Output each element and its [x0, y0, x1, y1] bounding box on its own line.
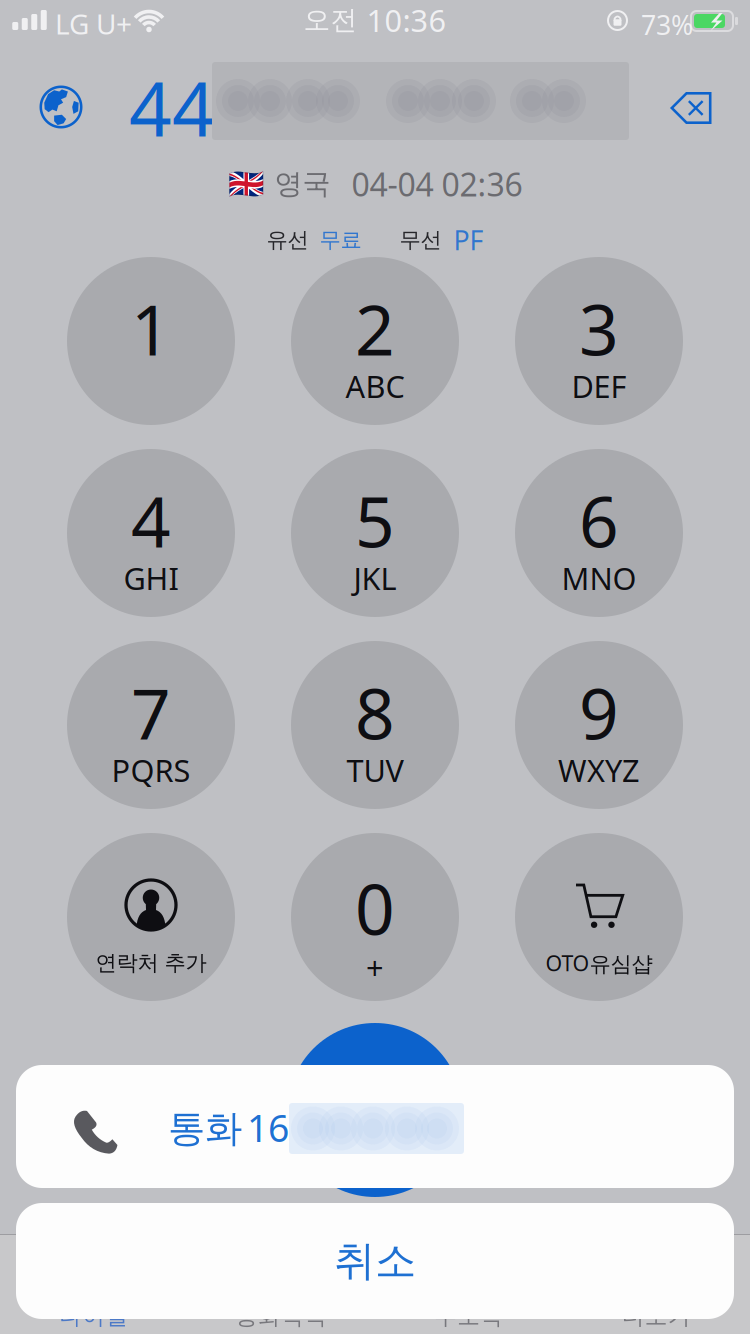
staticText: OTO유심샵 [545, 949, 652, 977]
button[interactable]: Call [288, 1023, 462, 1197]
button[interactable]: 4 [67, 449, 235, 617]
staticText: 8 [355, 666, 395, 759]
button[interactable]: 0 [291, 833, 459, 1001]
staticText: 04-04 02:36 [351, 163, 522, 205]
button[interactable]: International dialing [21, 67, 101, 147]
button[interactable]: 취소 [16, 1203, 734, 1319]
staticText: 통화목록 [235, 1302, 327, 1330]
staticText: 4 [131, 474, 171, 567]
staticText: 7 [131, 666, 171, 759]
staticText: JKL [353, 558, 396, 598]
staticText: 주소록 [434, 1302, 503, 1330]
staticText: 무료 [319, 227, 361, 253]
staticText: GHI [123, 558, 178, 598]
staticText: 1 [131, 282, 171, 375]
staticText: 16 [247, 1103, 289, 1152]
staticText: DEF [571, 366, 626, 406]
button[interactable]: 8 [291, 641, 459, 809]
button[interactable]: 7 [67, 641, 235, 809]
staticText: 44 [129, 58, 215, 157]
staticText: 영국 [274, 167, 330, 201]
staticText: 취소 [334, 1236, 416, 1286]
staticText: 9 [579, 666, 619, 759]
staticText: 2 [355, 282, 395, 375]
staticText: PF [453, 222, 483, 258]
button[interactable]: 통화 [16, 1065, 734, 1188]
button[interactable]: 6 [515, 449, 683, 617]
staticText: 오전 [303, 4, 357, 36]
staticText: 통화 [168, 1106, 242, 1151]
staticText: WXYZ [558, 750, 640, 790]
button[interactable]: 통화목록 [187, 1234, 375, 1334]
staticText: 6 [579, 474, 619, 567]
button[interactable]: 3 [515, 257, 683, 425]
staticText: 10:36 [366, 0, 446, 40]
button[interactable]: OTO유심샵 [515, 833, 683, 1001]
staticText: 유선 [266, 227, 308, 253]
staticText: 🇬🇧 [227, 167, 264, 201]
staticText: MNO [561, 558, 636, 598]
staticText: 연락처 추가 [95, 950, 206, 976]
button[interactable]: 주소록 [375, 1234, 562, 1334]
staticText: 더보기 [622, 1302, 691, 1330]
button[interactable]: 1 [67, 257, 235, 425]
button[interactable]: Delete [652, 73, 730, 143]
staticText: LG U+ [55, 5, 132, 42]
staticText: ABC [345, 366, 404, 406]
button[interactable]: 5 [291, 449, 459, 617]
button[interactable]: 9 [515, 641, 683, 809]
staticText: 73% [641, 7, 693, 42]
button[interactable]: 더보기 [562, 1234, 750, 1334]
button[interactable]: 2 [291, 257, 459, 425]
staticText: 3 [579, 282, 619, 375]
staticText: 0 [355, 862, 395, 954]
button[interactable]: 연락처 추가 [67, 833, 235, 1001]
staticText: 5 [355, 474, 395, 567]
button[interactable]: 다이얼 [0, 1234, 187, 1334]
staticText: PQRS [111, 750, 190, 790]
staticText: TUV [346, 750, 403, 790]
staticText: 다이얼 [59, 1302, 128, 1330]
staticText: 무선 [399, 227, 441, 253]
staticText: + [366, 947, 384, 987]
